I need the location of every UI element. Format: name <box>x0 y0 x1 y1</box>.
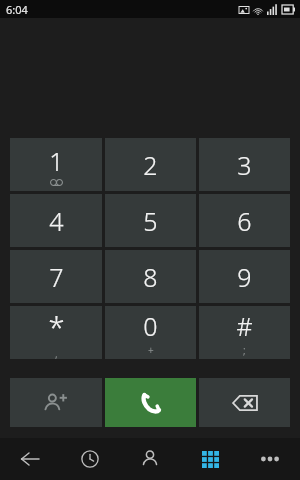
button[interactable]: Recents <box>60 438 120 480</box>
button[interactable]: 7 <box>10 250 102 303</box>
staticText: 3 <box>237 148 252 182</box>
button[interactable]: 6 <box>199 194 290 247</box>
button[interactable]: 4 <box>10 194 102 247</box>
staticText: * <box>48 306 65 347</box>
button[interactable]: Call <box>105 378 196 427</box>
button[interactable]: Keypad <box>180 438 240 480</box>
staticText: 9 <box>237 260 252 294</box>
button[interactable]: 2 <box>105 138 196 191</box>
button[interactable]: Back <box>0 438 60 480</box>
button[interactable]: 9 <box>199 250 290 303</box>
staticText: ; <box>243 343 246 357</box>
staticText: 2 <box>143 148 158 182</box>
button[interactable]: 5 <box>105 194 196 247</box>
staticText: 6 <box>237 204 252 238</box>
button[interactable]: More options <box>240 438 300 480</box>
button[interactable]: 1 <box>10 138 102 191</box>
button[interactable]: Add contact <box>10 378 102 427</box>
button[interactable]: * <box>10 306 102 359</box>
staticText: 0 <box>143 309 158 343</box>
staticText: # <box>236 309 253 343</box>
staticText: , <box>55 347 58 359</box>
staticText: 7 <box>49 260 64 294</box>
staticText: 1 <box>49 144 64 178</box>
staticText: 8 <box>143 260 158 294</box>
staticText: 4 <box>49 204 64 238</box>
staticText: 6:04 <box>6 2 28 17</box>
staticText: + <box>148 343 154 357</box>
button[interactable]: Backspace <box>199 378 290 427</box>
button[interactable]: 3 <box>199 138 290 191</box>
staticText: 5 <box>143 204 158 238</box>
button[interactable]: 0 <box>105 306 196 359</box>
button[interactable]: # <box>199 306 290 359</box>
button[interactable]: 8 <box>105 250 196 303</box>
button[interactable]: Contacts <box>120 438 180 480</box>
